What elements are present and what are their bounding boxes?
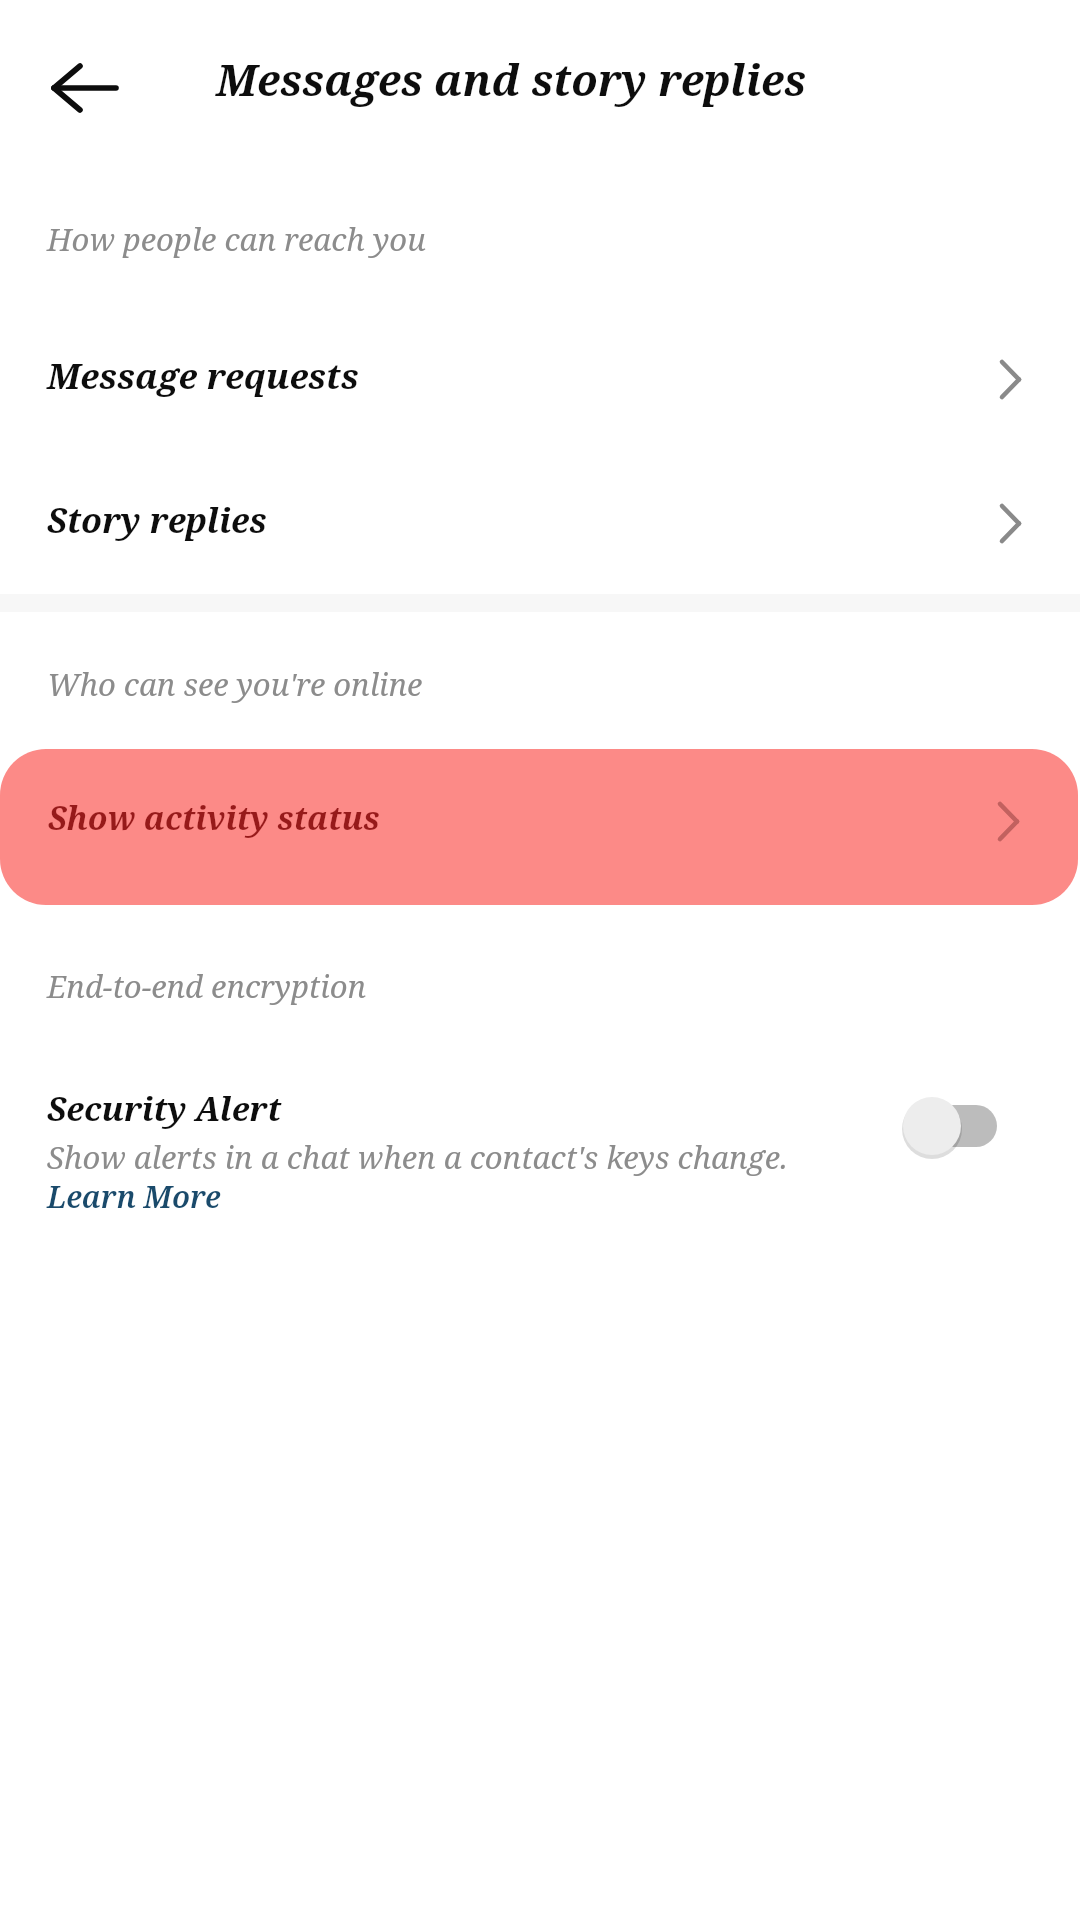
button[interactable]: Security Alert toggle (900, 1090, 1020, 1162)
button[interactable]: Security Alert (0, 1060, 1080, 1250)
staticText: Message requests (47, 352, 359, 400)
staticText: Security Alert (47, 1086, 282, 1131)
button[interactable]: Show activity status (0, 749, 1078, 905)
staticText: Show activity status (48, 796, 380, 840)
button[interactable]: Back (30, 44, 140, 132)
button[interactable]: Message requests (0, 330, 1080, 422)
staticText: Who can see you're online (47, 663, 423, 705)
staticText: End-to-end encryption (47, 965, 367, 1007)
button[interactable]: Learn More (47, 1176, 221, 1217)
button[interactable]: Story replies (0, 474, 1080, 566)
staticText: Story replies (47, 497, 267, 543)
staticText: Show alerts in a chat when a contact's k… (47, 1136, 788, 1178)
staticText: How people can reach you (47, 218, 426, 260)
staticText: Messages and story replies (216, 50, 807, 109)
